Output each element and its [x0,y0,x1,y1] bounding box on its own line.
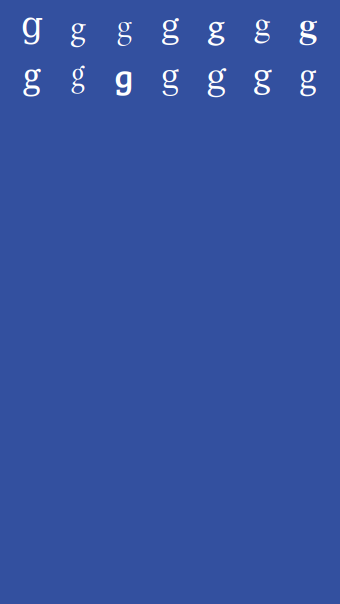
staticText: g [71,52,85,98]
staticText: g [299,1,317,49]
staticText: g [299,51,317,99]
staticText: g [21,5,43,45]
staticText: g [22,51,41,99]
staticText: g [253,52,271,98]
staticText: g [160,2,179,48]
staticText: g [114,51,133,99]
staticText: g [70,2,85,48]
staticText: g [207,0,224,50]
staticText: g [254,8,270,42]
staticText: g [206,53,225,97]
staticText: g [160,54,179,96]
staticText: g [116,4,131,46]
